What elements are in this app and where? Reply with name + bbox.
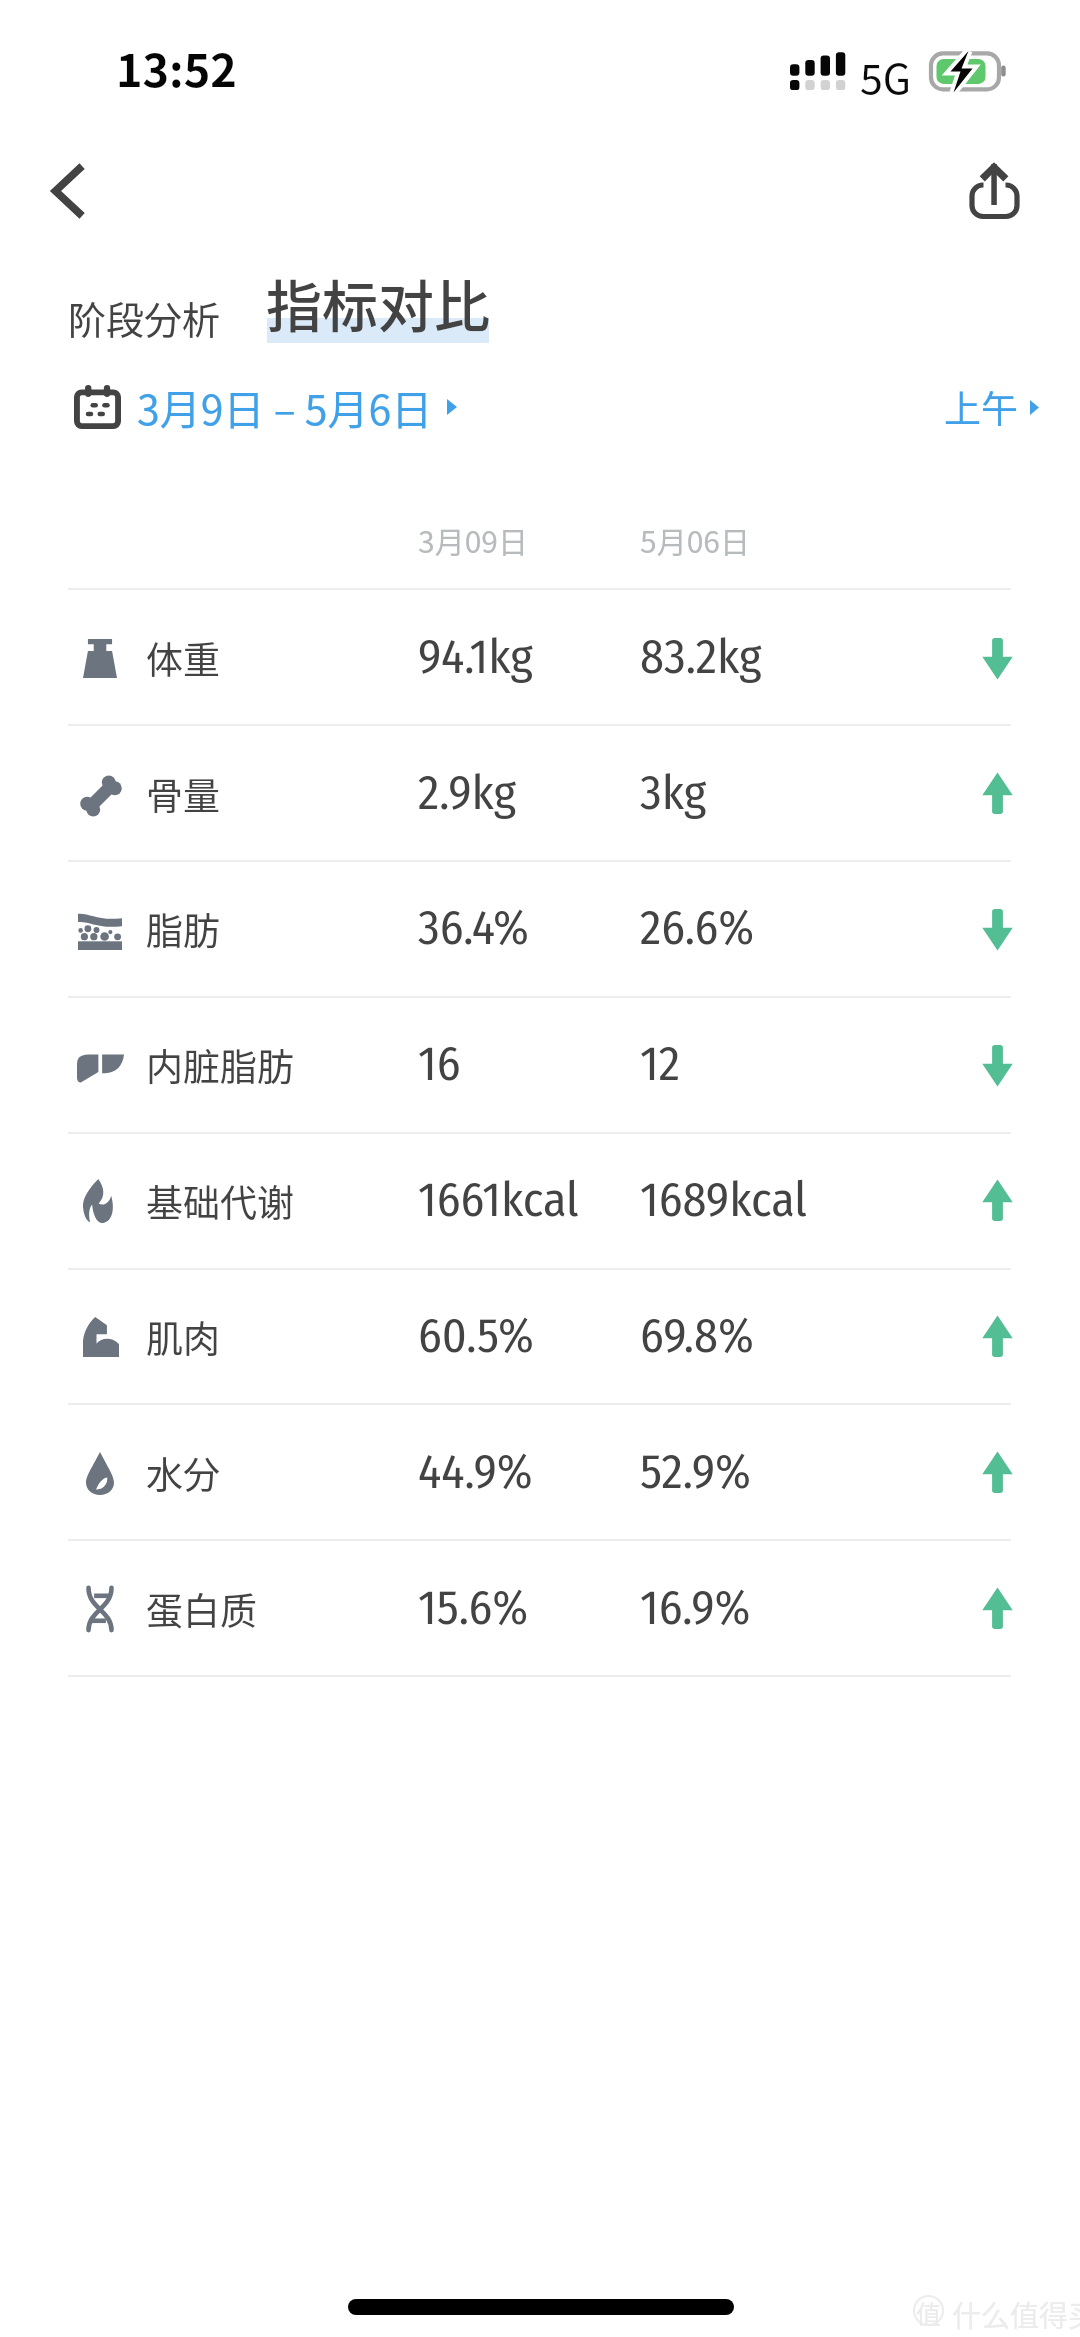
staticText: 60.5% <box>418 1307 534 1365</box>
button[interactable]: 蛋白质 <box>0 1541 1080 1677</box>
staticText: 值 <box>916 2295 942 2326</box>
staticText: 94.1kg <box>418 628 533 686</box>
staticText: 体重 <box>146 631 220 685</box>
staticText: 12 <box>640 1035 680 1093</box>
staticText: 肌肉 <box>146 1310 220 1364</box>
staticText: 26.6% <box>640 899 755 957</box>
button[interactable]: Share <box>952 148 1038 234</box>
staticText: 上午 <box>944 380 1018 434</box>
button[interactable]: 脂肪 <box>0 861 1080 997</box>
staticText: 2.9kg <box>418 764 517 822</box>
button[interactable]: 水分 <box>0 1405 1080 1541</box>
button[interactable]: 阶段分析 <box>68 290 221 345</box>
staticText: 内脏脂肪 <box>146 1038 294 1092</box>
staticText: 水分 <box>146 1446 220 1500</box>
staticText: 13:52 <box>116 35 237 100</box>
staticText: 指标对比 <box>266 262 490 343</box>
button[interactable]: 内脏脂肪 <box>0 997 1080 1133</box>
staticText: 阶段分析 <box>68 290 221 345</box>
staticText: 44.9% <box>418 1443 533 1501</box>
staticText: 36.4% <box>418 899 529 957</box>
button[interactable]: 指标对比 <box>266 262 494 354</box>
button[interactable]: Back <box>12 150 94 232</box>
button[interactable]: 肌肉 <box>0 1269 1080 1405</box>
staticText: 69.8% <box>640 1307 754 1365</box>
staticText: 脂肪 <box>146 902 220 956</box>
staticText: 骨量 <box>146 767 220 821</box>
staticText: 5月06日 <box>640 518 750 561</box>
staticText: 15.6% <box>418 1579 529 1637</box>
staticText: 5G <box>860 46 912 105</box>
staticText: 16.9% <box>640 1579 751 1637</box>
staticText: 1689kcal <box>640 1171 807 1229</box>
staticText: 52.9% <box>640 1443 751 1501</box>
staticText: 基础代谢 <box>146 1174 294 1228</box>
button[interactable]: 基础代谢 <box>0 1133 1080 1269</box>
button[interactable]: 3月9日 – 5月6日 <box>74 377 457 436</box>
staticText: 蛋白质 <box>146 1582 257 1636</box>
staticText: 3月9日 – 5月6日 <box>137 377 433 436</box>
staticText: 3月09日 <box>418 518 528 561</box>
staticText: 1661kcal <box>418 1171 579 1229</box>
staticText: 什么值得买 <box>952 2293 1080 2335</box>
button[interactable]: 上午 <box>944 380 1039 434</box>
staticText: 16 <box>418 1035 461 1093</box>
button[interactable]: 体重 <box>0 590 1080 726</box>
staticText: 3kg <box>640 764 707 822</box>
staticText: 83.2kg <box>640 628 762 686</box>
button[interactable]: 骨量 <box>0 726 1080 862</box>
